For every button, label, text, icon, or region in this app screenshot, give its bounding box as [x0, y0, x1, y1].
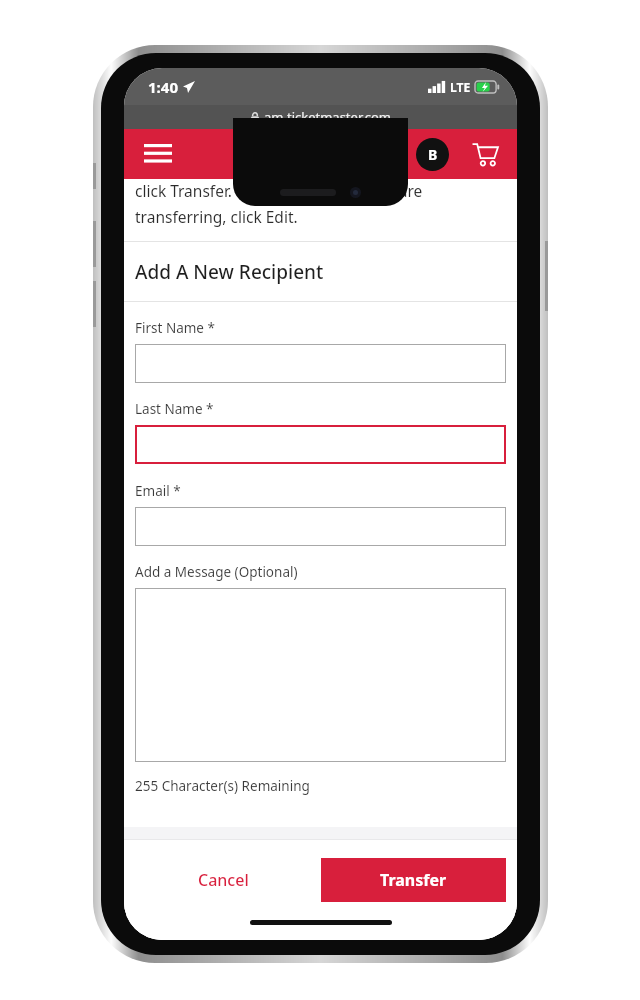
button[interactable]: First Name [135, 344, 506, 383]
button[interactable]: Transfer [321, 858, 506, 902]
staticText: 255 Character(s) Remaining [135, 777, 310, 795]
staticText: 1:40 [148, 77, 178, 97]
staticText: transferring, click Edit. [135, 206, 298, 227]
staticText: Add A New Recipient [135, 259, 324, 285]
button[interactable]: Last Name [135, 425, 506, 464]
staticText: Last Name * [135, 400, 214, 418]
button[interactable]: Email [135, 507, 506, 546]
staticText: Add a Message (Optional) [135, 563, 298, 581]
staticText: Email * [135, 482, 181, 500]
button[interactable]: Cancel [135, 858, 311, 902]
button[interactable]: Menu [140, 136, 176, 172]
button[interactable]: Account [416, 138, 449, 171]
staticText: First Name * [135, 319, 215, 337]
staticText: Transfer [380, 869, 447, 891]
staticText: click Transfer. To edit the tickets you … [135, 180, 423, 201]
button[interactable]: Message [135, 588, 506, 762]
staticText: B [428, 145, 438, 164]
button[interactable]: Cart [467, 136, 503, 172]
staticText: am.ticketmaster.com [264, 108, 391, 126]
staticText: LTE [450, 79, 471, 95]
staticText: Cancel [198, 869, 249, 891]
